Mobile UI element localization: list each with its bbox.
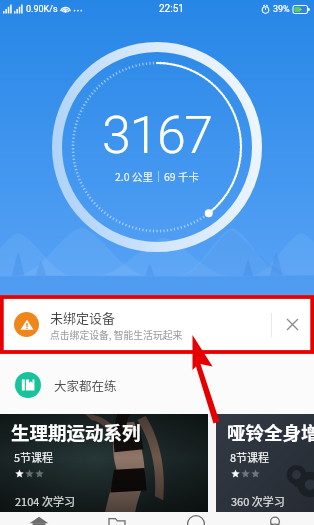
- staticText: 大家都在练: [54, 376, 117, 394]
- staticText: 5节课程: [14, 449, 54, 465]
- staticText: 39%: [273, 4, 290, 15]
- staticText: 0.90K/s: [26, 4, 58, 15]
- button[interactable]: 哑铃全身增: [216, 414, 314, 512]
- button[interactable]: 大家都在练: [15, 356, 314, 414]
- button[interactable]: Profile: [235, 512, 314, 525]
- staticText: 未绑定设备: [50, 308, 116, 327]
- staticText: 2104 次学习: [15, 493, 75, 509]
- staticText: 哑铃全身增: [227, 419, 314, 446]
- button[interactable]: Dismiss: [272, 297, 312, 352]
- staticText: 2.0 公里: [115, 169, 153, 184]
- staticText: 点击绑定设备, 智能生活玩起来: [50, 328, 183, 342]
- button[interactable]: 生理期运动系列: [0, 414, 208, 512]
- staticText: 3167: [102, 105, 212, 166]
- button[interactable]: Courses: [78, 512, 156, 525]
- staticText: 69 千卡: [164, 169, 200, 184]
- staticText: 生理期运动系列: [11, 419, 141, 446]
- button[interactable]: Discover: [156, 512, 235, 525]
- staticText: 8节课程: [230, 449, 270, 465]
- staticText: 22:51: [159, 3, 184, 15]
- staticText: 360 次学习: [231, 493, 285, 509]
- button[interactable]: 未绑定设备: [2, 297, 312, 352]
- button[interactable]: Home: [0, 512, 78, 525]
